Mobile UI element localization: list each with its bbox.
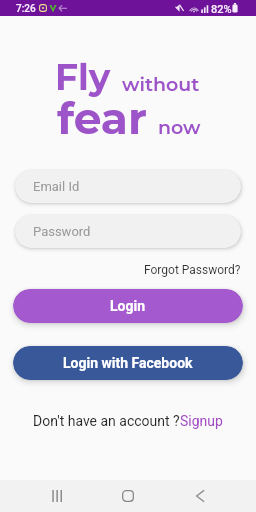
button[interactable]: Home bbox=[104, 480, 152, 512]
staticText: Login with Facebook bbox=[63, 355, 193, 371]
staticText: Password bbox=[33, 224, 91, 239]
staticText: Login bbox=[110, 298, 146, 314]
button[interactable]: Recent apps bbox=[33, 480, 81, 512]
staticText: now bbox=[158, 116, 201, 139]
staticText: Fly bbox=[55, 55, 111, 99]
button[interactable]: Login with Facebook bbox=[13, 346, 243, 380]
button[interactable]: Back bbox=[176, 480, 224, 512]
button[interactable]: Email Id bbox=[15, 170, 241, 203]
button[interactable]: Forgot Password? bbox=[142, 260, 243, 280]
staticText: fear bbox=[57, 91, 147, 145]
staticText: without bbox=[122, 73, 200, 96]
staticText: Signup bbox=[180, 413, 223, 429]
staticText: Email Id bbox=[33, 179, 80, 194]
button[interactable]: Don't have an account ? bbox=[33, 410, 223, 432]
staticText: 7:26 bbox=[16, 3, 36, 15]
staticText: 82% bbox=[211, 3, 232, 16]
staticText: Don't have an account ? bbox=[33, 413, 180, 429]
button[interactable]: Login bbox=[13, 289, 243, 323]
button[interactable]: Password bbox=[15, 215, 241, 248]
staticText: Forgot Password? bbox=[144, 263, 241, 277]
